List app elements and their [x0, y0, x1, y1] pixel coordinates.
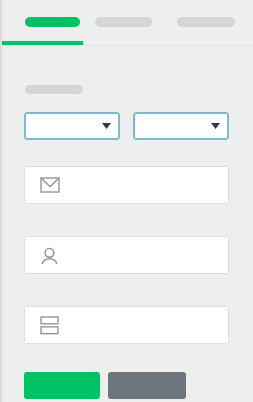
button[interactable]: Tab one, selected [25, 17, 80, 27]
button[interactable]: Dropdown [133, 112, 229, 140]
button[interactable]: Tab two [95, 17, 152, 27]
button[interactable]: Dropdown [24, 112, 120, 140]
button[interactable]: Cancel [108, 372, 186, 399]
button[interactable]: Name [24, 236, 229, 274]
button[interactable]: Rows [24, 306, 229, 344]
button[interactable]: Submit [24, 372, 100, 399]
button[interactable]: Tab three [177, 17, 235, 27]
button[interactable]: Email [24, 166, 229, 204]
